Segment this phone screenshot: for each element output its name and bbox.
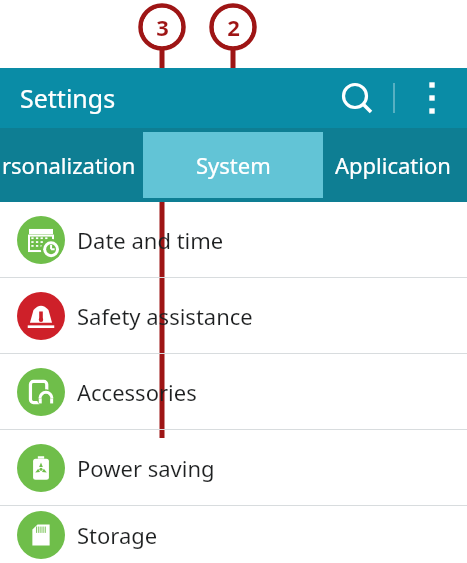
staticText: Date and time (77, 225, 224, 255)
staticText: 2 (227, 12, 240, 42)
button[interactable]: rsonalization (0, 128, 143, 202)
staticText: Settings (20, 81, 116, 115)
button[interactable]: Application (323, 128, 467, 202)
staticText: rsonalization (2, 150, 136, 180)
staticText: 3 (156, 12, 169, 42)
staticText: Storage (77, 520, 158, 550)
staticText: Accessories (77, 377, 197, 407)
staticText: Application (335, 150, 451, 180)
staticText: Safety assistance (77, 301, 253, 331)
staticText: System (196, 150, 271, 180)
button[interactable]: Safety assistance (0, 278, 467, 353)
button[interactable]: Storage (0, 506, 467, 563)
button[interactable]: Date and time (0, 202, 467, 277)
staticText: Power saving (77, 453, 215, 483)
button[interactable]: Search (332, 75, 378, 121)
button[interactable]: Power saving (0, 430, 467, 505)
button[interactable]: More options (410, 76, 454, 120)
button[interactable]: Accessories (0, 354, 467, 429)
button[interactable]: System (143, 132, 323, 198)
